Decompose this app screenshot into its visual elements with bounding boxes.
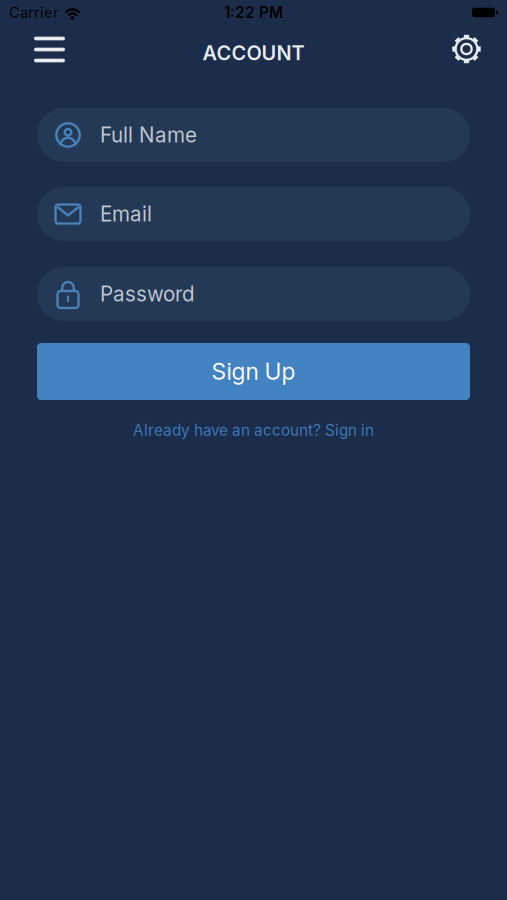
staticText: Password <box>100 281 195 306</box>
staticText: ACCOUNT <box>202 41 304 65</box>
button[interactable]: Settings <box>452 34 481 63</box>
button[interactable]: Menu <box>34 37 65 62</box>
staticText: Already have an account? Sign in <box>133 421 374 440</box>
staticText: Email <box>100 201 152 226</box>
staticText: Carrier <box>9 4 59 21</box>
staticText: Full Name <box>100 122 197 147</box>
button[interactable]: Already have an account? Sign in <box>133 421 374 440</box>
textField[interactable]: Email <box>37 187 470 241</box>
textField[interactable]: Full Name <box>37 108 470 162</box>
staticText: Sign Up <box>211 358 295 385</box>
staticText: 1:22 PM <box>224 3 283 22</box>
textField[interactable]: Password <box>37 267 470 321</box>
button[interactable]: Sign Up <box>37 343 470 400</box>
